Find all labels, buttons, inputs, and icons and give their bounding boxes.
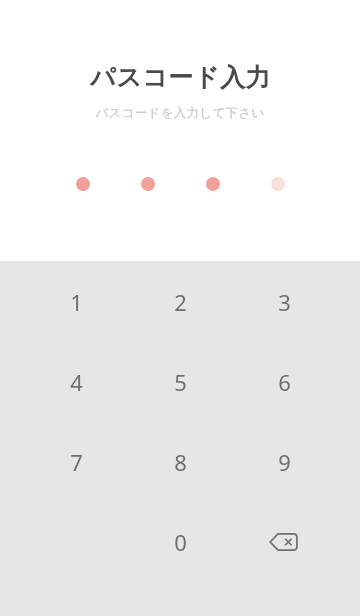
staticText: 6: [278, 367, 291, 397]
staticText: 3: [278, 287, 291, 317]
button[interactable]: Backspace: [232, 502, 336, 582]
button[interactable]: 3: [232, 262, 336, 342]
button[interactable]: 0: [128, 502, 232, 582]
staticText: 0: [174, 527, 187, 557]
staticText: 5: [174, 367, 187, 397]
staticText: 2: [174, 287, 187, 317]
staticText: 8: [174, 447, 187, 477]
staticText: パスコードを入力して下さい: [95, 105, 265, 121]
button[interactable]: 6: [232, 342, 336, 422]
button[interactable]: 4: [24, 342, 128, 422]
button[interactable]: 7: [24, 422, 128, 502]
button[interactable]: 9: [232, 422, 336, 502]
button[interactable]: 2: [128, 262, 232, 342]
staticText: 4: [70, 367, 83, 397]
button[interactable]: 1: [24, 262, 128, 342]
staticText: パスコード入力: [90, 62, 271, 93]
button[interactable]: 8: [128, 422, 232, 502]
button[interactable]: 5: [128, 342, 232, 422]
staticText: 9: [278, 447, 291, 477]
staticText: 1: [70, 287, 83, 317]
staticText: 7: [70, 447, 83, 477]
